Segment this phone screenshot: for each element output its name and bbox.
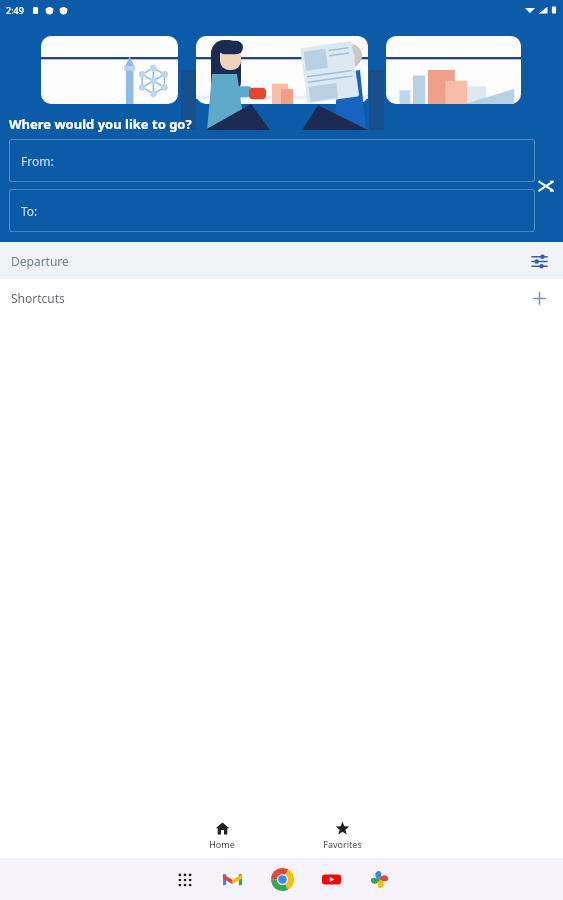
button[interactable]: Home [162, 816, 282, 858]
staticText: 2:49 [6, 4, 24, 16]
staticText: Favorites [323, 838, 362, 850]
staticText: Departure [11, 253, 69, 269]
button[interactable]: Favorites [282, 816, 402, 858]
other: Filter [526, 248, 552, 274]
button[interactable]: Shortcuts [0, 279, 563, 317]
staticText: From: [21, 153, 54, 169]
button[interactable]: Departure [0, 242, 563, 279]
other: Add shortcut [526, 285, 552, 311]
staticText: Shortcuts [11, 290, 65, 306]
button[interactable]: YouTube [319, 867, 344, 892]
button[interactable]: Photos [367, 867, 392, 892]
staticText: Home [209, 838, 235, 850]
button[interactable]: All apps [172, 867, 197, 892]
button[interactable]: Swap from and to [529, 169, 563, 203]
staticText: Where would you like to go? [9, 115, 192, 133]
staticText: To: [21, 203, 38, 219]
button[interactable]: Chrome [268, 865, 296, 893]
button[interactable]: Gmail [220, 867, 245, 892]
button[interactable]: From: [9, 139, 535, 182]
button[interactable]: To: [9, 189, 535, 232]
